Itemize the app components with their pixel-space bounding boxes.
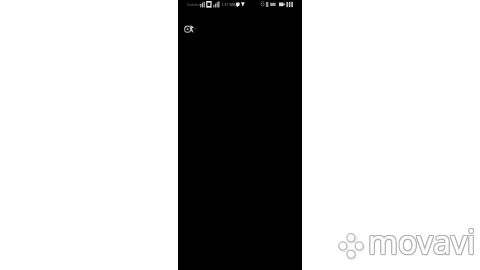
staticText: movavi xyxy=(367,220,475,264)
staticText: movavi xyxy=(367,221,475,265)
staticText: movavi xyxy=(367,219,475,263)
staticText: Vodafone xyxy=(187,2,203,7)
staticText: movavi xyxy=(368,221,476,265)
button[interactable]: App logo xyxy=(184,24,196,34)
staticText: movavi xyxy=(368,219,476,263)
staticText: movavi xyxy=(368,220,476,264)
other: Status bar xyxy=(178,0,302,9)
staticText: movavi xyxy=(369,221,477,265)
staticText: movavi xyxy=(369,222,477,266)
staticText: 1.31 MB/s xyxy=(221,2,239,7)
staticText: movavi xyxy=(369,219,477,263)
staticText: movavi xyxy=(369,220,477,264)
